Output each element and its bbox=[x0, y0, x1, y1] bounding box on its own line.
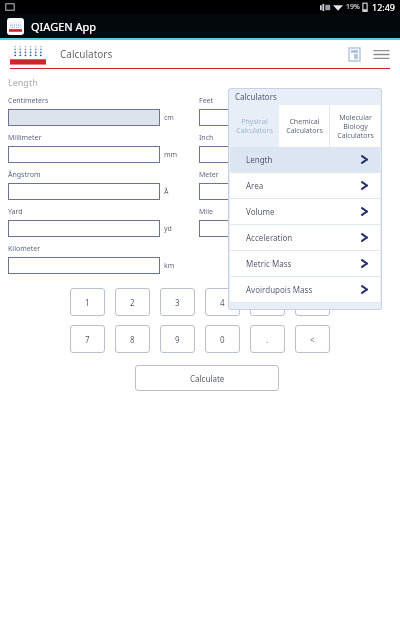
staticText: QIAGEN App bbox=[31, 19, 97, 34]
button[interactable] bbox=[199, 183, 349, 200]
staticText: Inch bbox=[199, 133, 214, 143]
staticText: 19% bbox=[346, 2, 360, 12]
button[interactable]: Acceleration bbox=[230, 225, 380, 250]
button[interactable] bbox=[8, 183, 160, 200]
button[interactable]: 4 bbox=[205, 288, 240, 316]
staticText: mm bbox=[164, 150, 178, 160]
staticText: 7 bbox=[85, 334, 90, 345]
staticText: . bbox=[266, 334, 269, 345]
staticText: Metric Mass bbox=[246, 258, 292, 269]
button[interactable]: 5 bbox=[250, 288, 285, 316]
staticText: Å bbox=[164, 187, 169, 197]
staticText: Volume bbox=[246, 206, 275, 217]
button[interactable] bbox=[8, 220, 160, 237]
staticText: yd bbox=[164, 224, 172, 234]
button[interactable]: . bbox=[250, 325, 285, 353]
button[interactable] bbox=[199, 146, 349, 163]
staticText: Length bbox=[8, 76, 38, 88]
button[interactable]: Area bbox=[230, 173, 380, 198]
button[interactable]: Metric Mass bbox=[230, 251, 380, 276]
staticText: 12:49 bbox=[372, 1, 396, 13]
button[interactable] bbox=[8, 146, 160, 163]
staticText: 8 bbox=[130, 334, 135, 345]
staticText: Mile bbox=[199, 207, 213, 217]
button[interactable]: Chemical Calculators bbox=[279, 105, 329, 147]
staticText: Calculate bbox=[190, 373, 225, 384]
button[interactable]: Physical Calculators bbox=[230, 105, 279, 147]
button[interactable]: Calculator bbox=[344, 44, 364, 64]
staticText: Feet bbox=[199, 96, 214, 106]
staticText: 3 bbox=[175, 297, 180, 308]
staticText: 2 bbox=[130, 297, 135, 308]
button[interactable]: 7 bbox=[70, 325, 105, 353]
button[interactable]: 3 bbox=[160, 288, 195, 316]
staticText: Ångstrom bbox=[8, 170, 41, 180]
staticText: Physical Calculators bbox=[236, 117, 273, 135]
button[interactable]: Menu bbox=[370, 43, 392, 65]
staticText: 4 bbox=[220, 297, 225, 308]
staticText: Kilometer bbox=[8, 244, 41, 254]
staticText: Calculators bbox=[235, 91, 277, 102]
staticText: Avoirdupois Mass bbox=[246, 284, 313, 295]
button[interactable]: 2 bbox=[115, 288, 150, 316]
staticText: Yard bbox=[8, 207, 23, 217]
button[interactable]: 0 bbox=[205, 325, 240, 353]
staticText: 5 bbox=[265, 297, 270, 308]
button[interactable]: Volume bbox=[230, 199, 380, 224]
staticText: km bbox=[164, 261, 175, 271]
button[interactable] bbox=[199, 109, 349, 126]
button[interactable] bbox=[8, 109, 160, 126]
staticText: Molecular Biology Calculators bbox=[337, 113, 374, 140]
staticText: Centimeters bbox=[8, 96, 49, 106]
staticText: Millimeter bbox=[8, 133, 42, 143]
button[interactable]: 1 bbox=[70, 288, 105, 316]
staticText: Calculators bbox=[60, 47, 113, 61]
staticText: Meter bbox=[199, 170, 219, 180]
staticText: ft bbox=[353, 113, 358, 123]
staticText: 1 bbox=[85, 297, 90, 308]
staticText: Length bbox=[246, 154, 273, 165]
staticText: Chemical Calculators bbox=[286, 117, 323, 135]
button[interactable]: 9 bbox=[160, 325, 195, 353]
button[interactable]: 8 bbox=[115, 325, 150, 353]
button[interactable]: < bbox=[295, 325, 330, 353]
button[interactable]: Calculate bbox=[135, 365, 279, 391]
staticText: mi bbox=[353, 224, 362, 234]
button[interactable]: Molecular Biology Calculators bbox=[330, 105, 380, 147]
staticText: 0 bbox=[220, 334, 225, 345]
button[interactable]: Avoirdupois Mass bbox=[230, 277, 380, 302]
button[interactable]: 6 bbox=[295, 288, 330, 316]
button[interactable] bbox=[199, 220, 349, 237]
staticText: Acceleration bbox=[246, 232, 293, 243]
button[interactable] bbox=[8, 257, 160, 274]
button[interactable]: Length bbox=[230, 147, 380, 172]
staticText: 9 bbox=[175, 334, 180, 345]
staticText: Area bbox=[246, 180, 264, 191]
staticText: 6 bbox=[310, 297, 315, 308]
staticText: < bbox=[310, 334, 315, 345]
staticText: cm bbox=[164, 113, 174, 123]
